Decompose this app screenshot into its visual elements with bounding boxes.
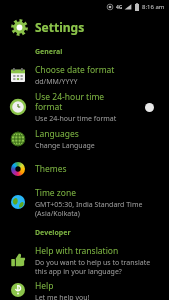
staticText: Help (35, 280, 54, 292)
staticText: Help with translation (35, 245, 119, 257)
staticText: Choose date format (35, 64, 115, 76)
button[interactable]: Toggle 24-hour time format (139, 100, 159, 114)
staticText: GMT+05:30, India Standard Time (Asia/Kol… (35, 200, 159, 218)
button[interactable]: Use 24-hour time format (0, 91, 169, 123)
button[interactable]: Themes (0, 155, 169, 182)
staticText: Developer (35, 228, 71, 238)
staticText: Use 24-hour time format (35, 91, 133, 113)
staticText: Settings (35, 19, 85, 35)
button[interactable]: Choose date format (0, 59, 169, 91)
staticText: Do you want to help us to translate this… (35, 258, 159, 276)
staticText: 4G (116, 4, 123, 11)
staticText: Use 24-hour time format (35, 114, 117, 123)
button[interactable]: Help (0, 280, 169, 300)
staticText: Change Language (35, 141, 95, 151)
staticText: Time zone (35, 187, 77, 199)
staticText: Themes (35, 163, 67, 175)
button[interactable]: Languages (0, 123, 169, 155)
staticText: General (35, 47, 63, 57)
button[interactable]: Help with translation (0, 240, 169, 280)
staticText: 8:16 am (142, 3, 165, 11)
staticText: Let me help you! (35, 293, 90, 300)
staticText: dd/MM/YYYY (35, 77, 78, 87)
button[interactable]: Time zone (0, 182, 169, 222)
staticText: Languages (35, 128, 79, 140)
